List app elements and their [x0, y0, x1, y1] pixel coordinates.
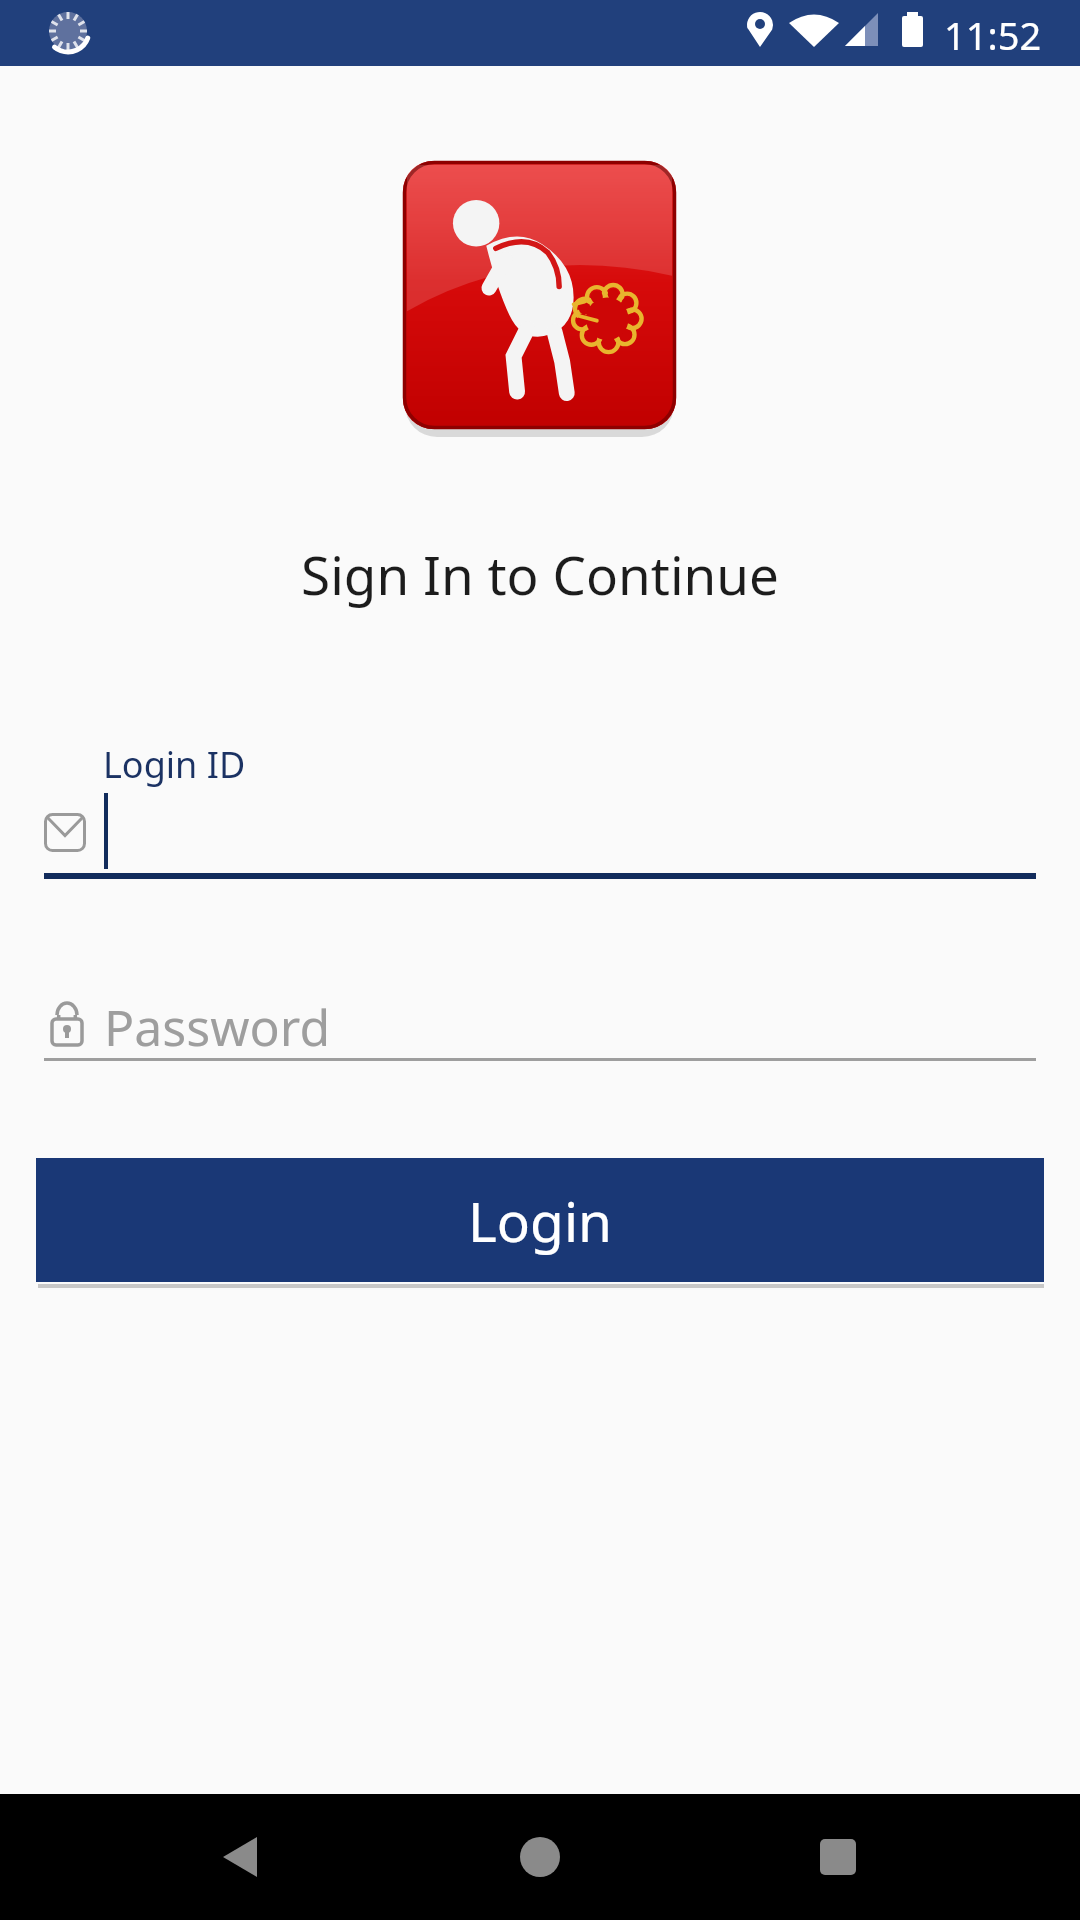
- button[interactable]: [180, 1827, 300, 1887]
- staticText: Sign In to Continue: [0, 538, 1080, 610]
- staticText: 11:52: [944, 9, 1042, 61]
- button[interactable]: [778, 1827, 898, 1887]
- staticText: Login: [468, 1183, 613, 1258]
- button[interactable]: Login: [36, 1158, 1044, 1282]
- staticText: Login ID: [103, 740, 246, 789]
- staticText: Password: [104, 993, 331, 1061]
- button[interactable]: [480, 1827, 600, 1887]
